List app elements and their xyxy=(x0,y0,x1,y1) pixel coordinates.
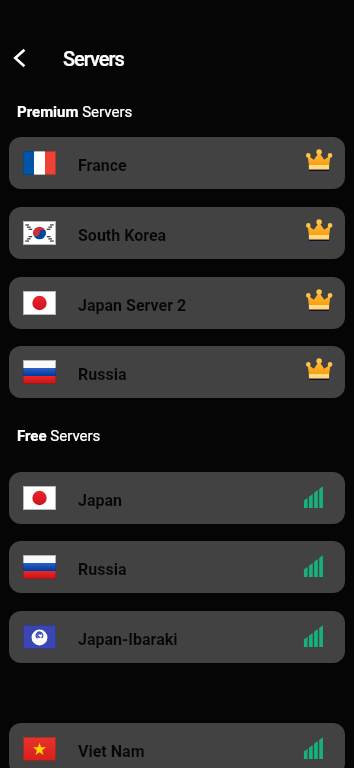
staticText: Premium Servers xyxy=(17,103,133,121)
staticText: Viet Nam xyxy=(78,742,145,761)
staticText: South Korea xyxy=(78,226,167,245)
staticText: Russia xyxy=(78,365,127,384)
button[interactable]: South Korea xyxy=(9,207,345,259)
staticText: Japan-Ibaraki xyxy=(78,630,178,649)
staticText: Japan Server 2 xyxy=(78,296,187,315)
staticText: Russia xyxy=(78,560,127,579)
button[interactable]: Russia xyxy=(9,541,345,593)
button[interactable]: Back xyxy=(7,46,31,70)
button[interactable]: Japan xyxy=(9,472,345,524)
button[interactable]: France xyxy=(9,137,345,189)
staticText: Free Servers xyxy=(17,427,101,445)
staticText: France xyxy=(78,156,127,175)
button[interactable]: Japan Server 2 xyxy=(9,277,345,329)
staticText: Servers xyxy=(63,47,124,70)
button[interactable]: Russia xyxy=(9,346,345,398)
button[interactable]: Viet Nam xyxy=(9,723,345,768)
staticText: Japan xyxy=(78,491,123,510)
button[interactable]: Japan-Ibaraki xyxy=(9,611,345,663)
